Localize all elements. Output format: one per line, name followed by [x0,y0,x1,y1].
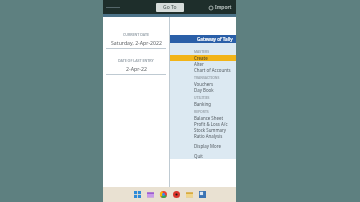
button[interactable]: File Explorer [146,190,155,199]
button[interactable]: Balance Sheet [170,115,236,121]
button[interactable]: Stock Summary [170,127,236,133]
staticText: TRANSACTIONS [194,75,236,80]
button[interactable]: Go To [156,3,184,12]
staticText: MASTERS [194,49,236,54]
staticText: Balance Sheet [194,115,224,121]
button[interactable]: Alter [170,61,236,67]
staticText: Vouchers [194,81,214,87]
staticText: Profit & Loss A/c [194,121,228,127]
button[interactable]: Create [170,55,236,61]
button[interactable]: Vouchers [170,81,236,87]
staticText: DATE OF LAST ENTRY [118,58,154,63]
button[interactable]: Start [133,190,142,199]
button[interactable]: CURRENT DATE [103,31,169,50]
staticText: Alter [194,61,204,67]
staticText: Day Book [194,87,214,93]
button[interactable]: Display More Reports [170,143,236,149]
button[interactable]: Day Book [170,87,236,93]
staticText: Import [215,4,232,11]
staticText: REPORTS [194,109,236,114]
staticText: UTILITIES [194,95,236,100]
staticText: Display More Reports [194,143,236,149]
staticText: Saturday, 2-Apr-2022 [111,39,162,46]
button[interactable]: DATE OF LAST ENTRY [103,57,169,76]
button[interactable]: Chart of Accounts [170,67,236,73]
staticText: Stock Summary [194,127,227,133]
button[interactable]: Import [205,2,236,13]
staticText: 2-Apr-22 [126,65,147,72]
staticText: Quit [194,153,203,159]
staticText: CURRENT DATE [123,32,149,37]
staticText: Banking [194,101,211,107]
button[interactable]: Media Player [172,190,181,199]
staticText: Chart of Accounts [194,67,231,73]
button[interactable]: Banking [170,101,236,107]
button[interactable]: Ratio Analysis [170,133,236,139]
staticText: Ratio Analysis [194,133,223,139]
staticText: Create [194,55,208,61]
button[interactable]: Profit & Loss A/c [170,121,236,127]
button[interactable]: Documents [185,190,194,199]
staticText: Go To [163,4,177,11]
button[interactable]: Quit [170,153,236,159]
button[interactable]: Browser [159,190,168,199]
staticText: Gateway of Tally [197,36,233,42]
button[interactable]: Tally [198,190,207,199]
